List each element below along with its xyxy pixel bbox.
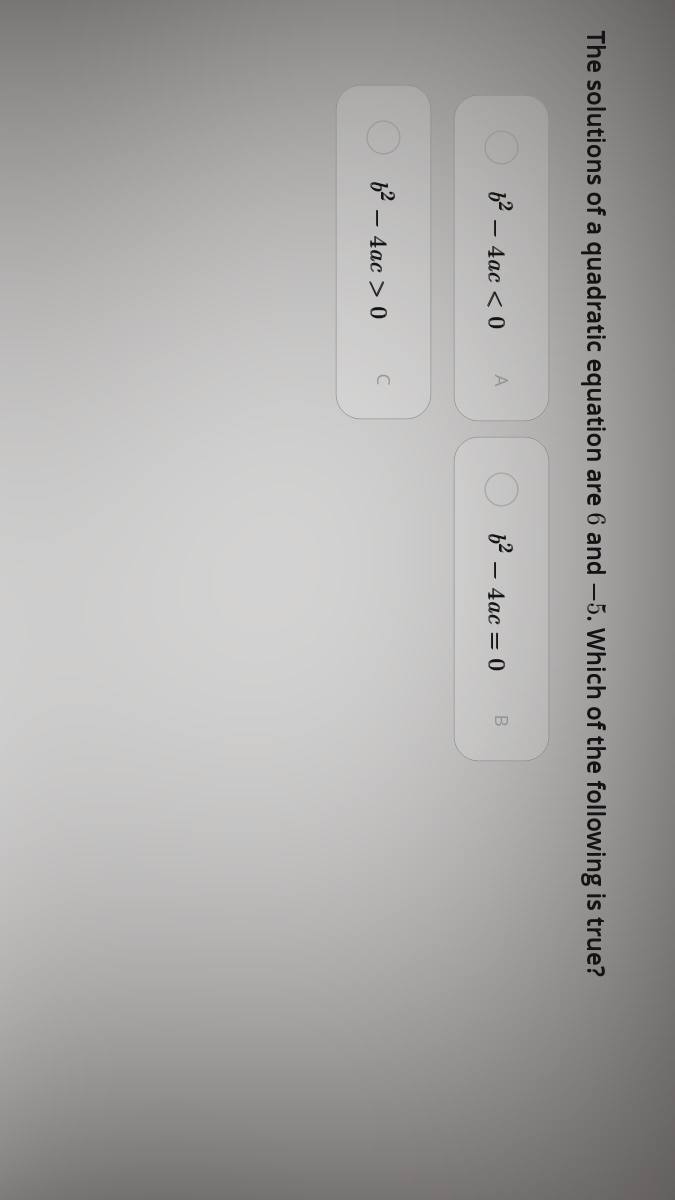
button[interactable]: Select option B [453,436,549,761]
staticText: A [488,374,514,387]
staticText: b2 − 4ac < 0 [481,189,521,328]
staticText: The solutions of a quadratic equation ar… [578,30,615,977]
button[interactable]: Select option A [453,94,549,421]
staticText: The solutions of a quadratic equation ar… [579,30,616,977]
staticText: b2 − 4ac < 0 [481,190,521,329]
staticText: b2 − 4ac = 0 [481,532,521,671]
staticText: b2 − 4ac < 0 [480,189,520,328]
staticText: B [488,714,514,727]
other: Select option C [366,120,400,154]
staticText: b2 − 4ac > 0 [363,180,403,319]
staticText: b2 − 4ac > 0 [363,179,403,318]
other: Select option A [484,130,518,164]
other: Select option B [484,472,518,506]
staticText: b2 − 4ac = 0 [481,531,521,670]
button[interactable]: Select option C [335,84,431,419]
staticText: C [370,373,396,385]
staticText: b2 − 4ac = 0 [480,531,520,670]
staticText: b2 − 4ac > 0 [362,179,402,318]
